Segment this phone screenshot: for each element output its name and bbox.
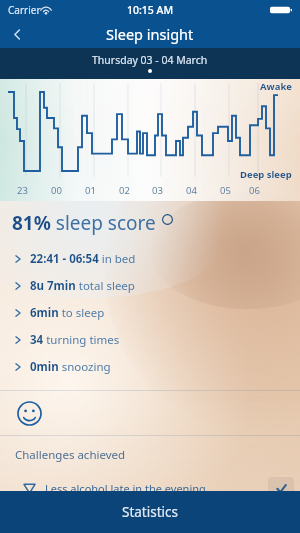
staticText: 0min snoozing xyxy=(30,359,111,375)
staticText: 6min to sleep xyxy=(30,305,105,321)
staticText: Deep sleep xyxy=(240,168,292,181)
other: Mood xyxy=(17,401,42,426)
button[interactable]: Statistics xyxy=(0,491,300,533)
button[interactable]: Less alcohol late in the evening xyxy=(0,475,300,501)
staticText: 02 xyxy=(119,184,130,197)
staticText: 06 xyxy=(249,184,260,197)
staticText: Carrier xyxy=(8,3,41,17)
staticText: 22:41 - 06:54 in bed xyxy=(30,251,136,267)
button[interactable]: 8u 7min total sleep xyxy=(14,272,300,299)
staticText: Sleep insight xyxy=(106,24,194,44)
staticText: 00 xyxy=(51,184,62,197)
button[interactable]: 81% sleep score xyxy=(12,210,300,236)
button[interactable]: 6min to sleep xyxy=(14,299,300,326)
staticText: 04 xyxy=(186,184,197,197)
button[interactable]: 22:41 - 06:54 in bed xyxy=(14,245,300,272)
button[interactable]: Mood xyxy=(0,391,300,435)
staticText: 05 xyxy=(220,184,231,197)
button[interactable]: 0min snoozing xyxy=(14,353,300,380)
staticText: Statistics xyxy=(122,503,178,521)
staticText: 34 turning times xyxy=(30,332,120,348)
staticText: 03 xyxy=(152,184,163,197)
button[interactable]: Thursday 03 - 04 March xyxy=(0,48,300,79)
staticText: Awake xyxy=(260,80,292,93)
button[interactable]: 34 turning times xyxy=(14,326,300,353)
staticText: 01 xyxy=(85,184,96,197)
staticText: Less alcohol late in the evening xyxy=(45,481,206,496)
staticText: Challenges achieved xyxy=(15,447,126,463)
staticText: 23 xyxy=(17,184,28,197)
staticText: 81% sleep score xyxy=(12,210,156,236)
staticText: 8u 7min total sleep xyxy=(30,278,135,294)
button[interactable]: Back xyxy=(0,20,34,48)
staticText: 10:15 AM xyxy=(127,3,174,17)
staticText: Thursday 03 - 04 March xyxy=(92,53,208,67)
